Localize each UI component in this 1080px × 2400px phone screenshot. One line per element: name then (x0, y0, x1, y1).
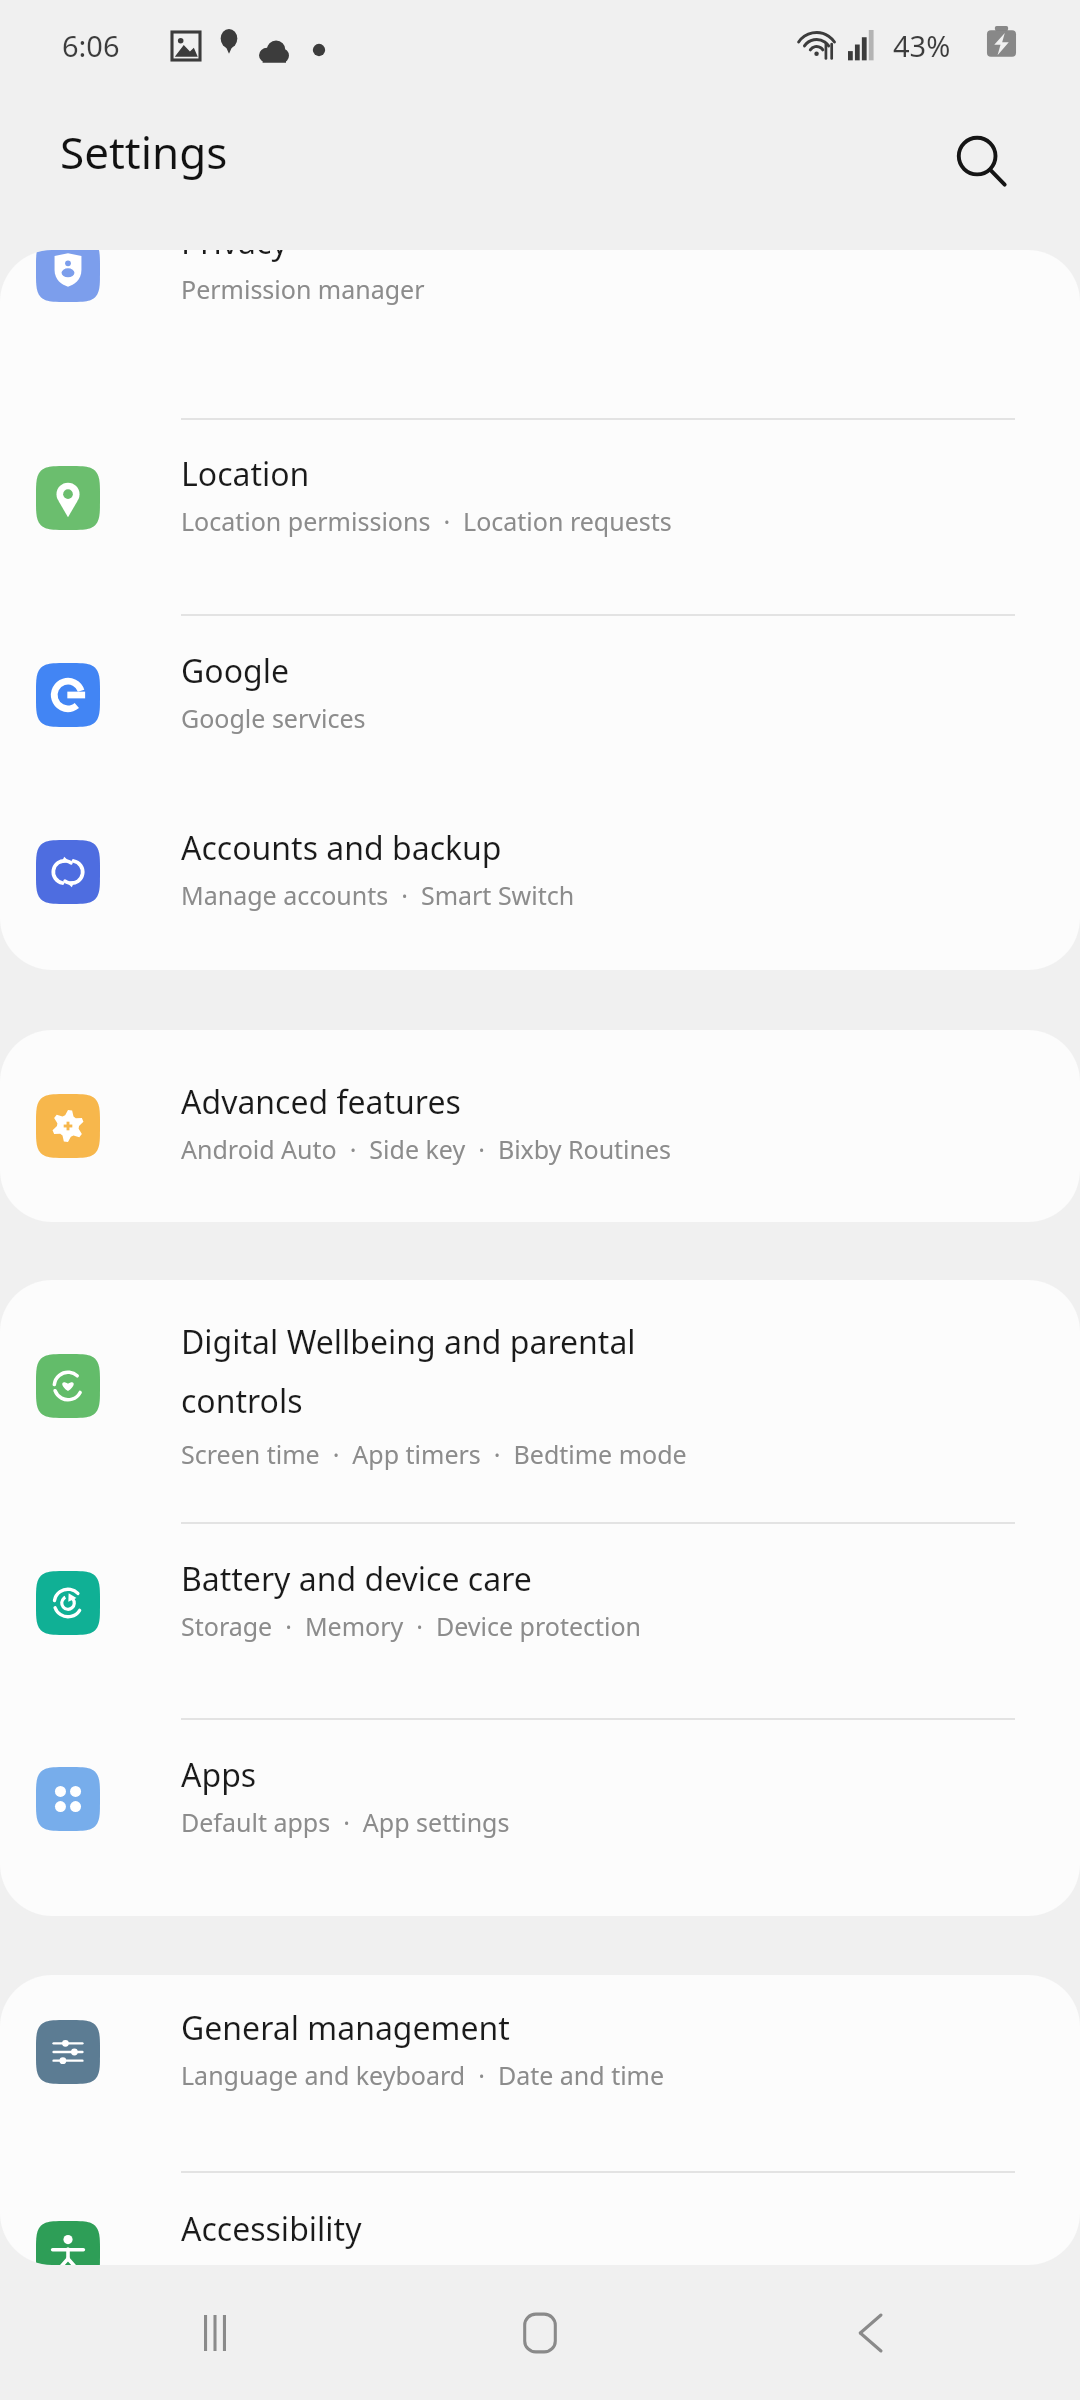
button[interactable]: Back (818, 2288, 908, 2378)
staticText: Language and keyboard · Date and time (181, 2058, 665, 2092)
button[interactable]: Battery and device care (0, 1524, 1080, 1718)
staticText: Digital Wellbeing and parental (181, 1320, 636, 1364)
button[interactable]: Home (495, 2288, 585, 2378)
staticText: Google (181, 649, 290, 693)
button[interactable]: Advanced features (0, 1030, 1080, 1222)
staticText: Privacy (181, 250, 288, 264)
staticText: General management (181, 2006, 510, 2050)
staticText: Battery and device care (181, 1557, 532, 1601)
button[interactable]: Search (938, 118, 1026, 206)
staticText: Google services (181, 701, 366, 735)
button[interactable]: Recent apps (170, 2288, 260, 2378)
button[interactable]: Google (0, 616, 1080, 810)
button[interactable]: Location (0, 420, 1080, 614)
button[interactable]: Digital Wellbeing and parental (0, 1280, 1080, 1522)
button[interactable]: Apps (0, 1720, 1080, 1916)
button[interactable]: Accounts and backup (0, 810, 1080, 970)
staticText: 43% (893, 26, 951, 65)
staticText: Permission manager (181, 272, 425, 306)
staticText: Apps (181, 1753, 257, 1797)
staticText: Advanced features (181, 1080, 461, 1124)
staticText: Accessibility (181, 2207, 362, 2251)
staticText: Storage · Memory · Device protection (181, 1609, 642, 1643)
staticText: Manage accounts · Smart Switch (181, 878, 575, 912)
staticText: Default apps · App settings (181, 1805, 510, 1839)
staticText: Settings (60, 122, 228, 182)
staticText: Location permissions · Location requests (181, 504, 672, 538)
staticText: Android Auto · Side key · Bixby Routines (181, 1132, 672, 1166)
staticText: Screen time · App timers · Bedtime mode (181, 1437, 687, 1471)
button[interactable]: Privacy (0, 250, 1080, 362)
staticText: controls (181, 1379, 303, 1423)
button[interactable]: General management (0, 1975, 1080, 2171)
button[interactable]: Accessibility (0, 2173, 1080, 2265)
staticText: 6:06 (62, 26, 120, 65)
staticText: Location (181, 452, 310, 496)
staticText: Accounts and backup (181, 826, 502, 870)
